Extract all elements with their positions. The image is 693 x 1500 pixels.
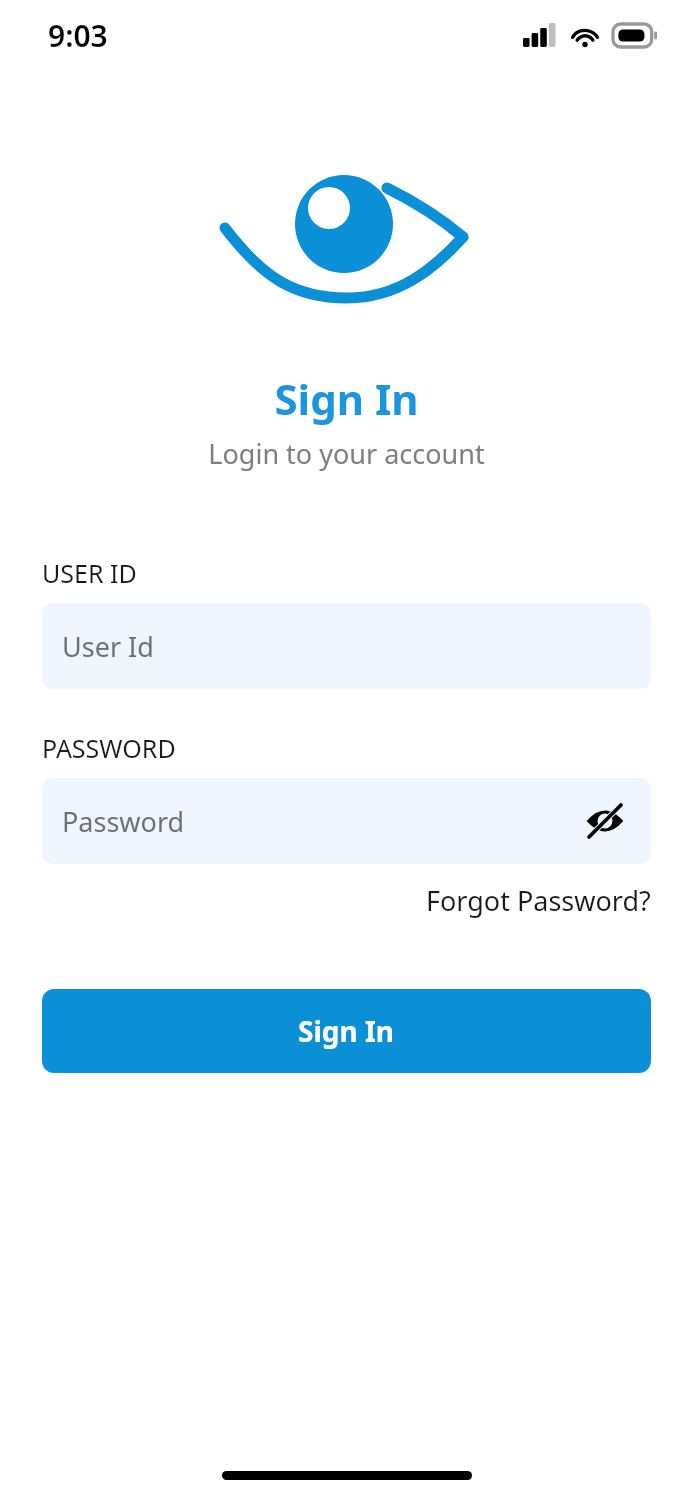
staticText: 9:03 (48, 15, 108, 56)
staticText: PASSWORD (42, 731, 176, 765)
staticText: Sign In (298, 1012, 395, 1050)
staticText: User Id (62, 628, 154, 665)
staticText: Login to your account (0, 435, 693, 472)
staticText: Password (62, 803, 185, 840)
button[interactable]: Show password (579, 795, 631, 847)
staticText: USER ID (42, 556, 137, 590)
button[interactable]: Sign In (42, 989, 651, 1073)
button[interactable]: Password (42, 778, 651, 864)
button[interactable]: Forgot Password? (426, 882, 651, 919)
staticText: Sign In (0, 370, 693, 427)
button[interactable]: User Id (42, 603, 651, 689)
